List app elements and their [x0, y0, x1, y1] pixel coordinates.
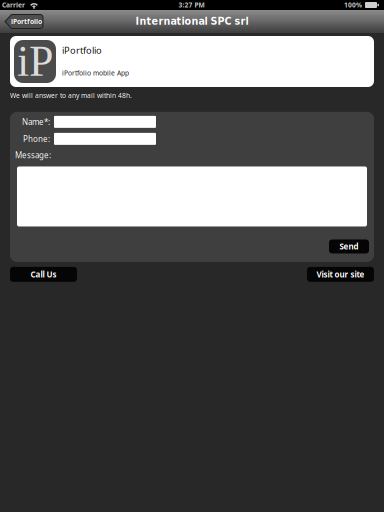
staticText: International SPC srl — [135, 16, 248, 27]
staticText: Carrier — [2, 1, 25, 9]
staticText: Phone: — [23, 133, 50, 144]
staticText: We will answer to any mail within 48h. — [10, 91, 132, 100]
button[interactable]: Visit our site — [307, 267, 374, 282]
button[interactable]: Send — [329, 239, 369, 253]
staticText: iPortfolio — [11, 17, 42, 26]
staticText: iP — [17, 37, 53, 85]
staticText: Visit our site — [316, 269, 364, 280]
staticText: Message: — [15, 150, 51, 160]
staticText: Send — [339, 241, 358, 252]
staticText: iPortfolio — [62, 44, 102, 56]
button[interactable]: iPortfolio — [5, 14, 43, 28]
staticText: 100% — [344, 1, 362, 9]
staticText: Name*: — [22, 116, 50, 127]
staticText: 3:27 PM — [178, 1, 204, 9]
button[interactable]: Call Us — [10, 267, 77, 282]
staticText: iPortfolio mobile App — [62, 68, 129, 77]
staticText: Call Us — [30, 269, 56, 280]
